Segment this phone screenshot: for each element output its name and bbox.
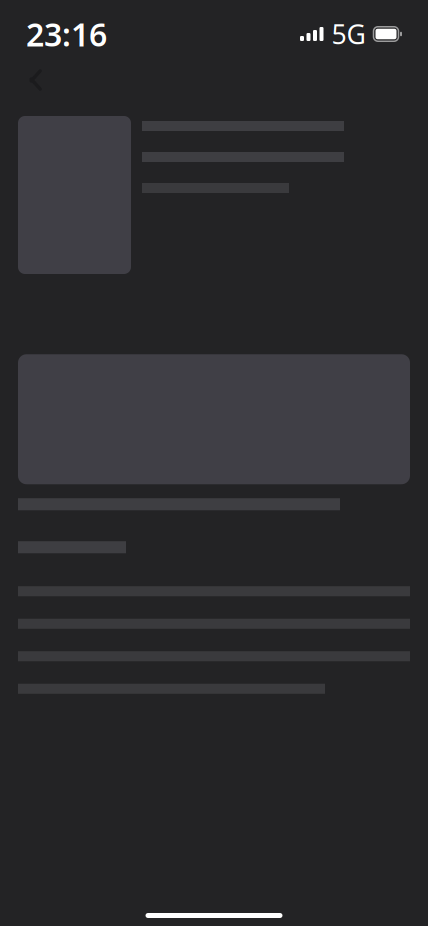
staticText: 23:16	[26, 13, 107, 55]
staticText: 5G	[331, 16, 365, 52]
